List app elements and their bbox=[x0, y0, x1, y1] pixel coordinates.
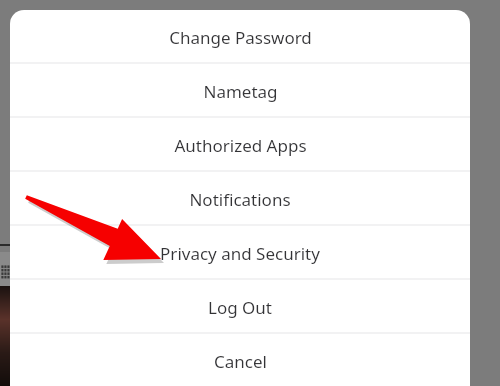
button[interactable]: Privacy and Security bbox=[10, 226, 470, 280]
staticText: Nametag bbox=[203, 80, 278, 103]
staticText: Cancel bbox=[214, 350, 267, 373]
staticText: Change Password bbox=[169, 26, 312, 49]
staticText: Privacy and Security bbox=[160, 242, 320, 265]
staticText: Authorized Apps bbox=[174, 134, 307, 157]
button[interactable]: Authorized Apps bbox=[10, 118, 470, 172]
other: Apps grid bbox=[1, 265, 10, 279]
button[interactable]: Cancel bbox=[10, 334, 470, 386]
staticText: Notifications bbox=[189, 188, 291, 211]
button[interactable]: Change Password bbox=[10, 10, 470, 64]
button[interactable]: Notifications bbox=[10, 172, 470, 226]
staticText: Log Out bbox=[208, 296, 272, 319]
button[interactable]: Log Out bbox=[10, 280, 470, 334]
button[interactable]: Nametag bbox=[10, 64, 470, 118]
